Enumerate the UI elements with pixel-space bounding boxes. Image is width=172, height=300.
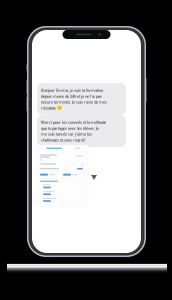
staticText: Bonjour Emma, je suis ta formation depui…	[41, 88, 107, 110]
staticText: Merci pour les conseils et la méthode qu…	[41, 120, 106, 142]
